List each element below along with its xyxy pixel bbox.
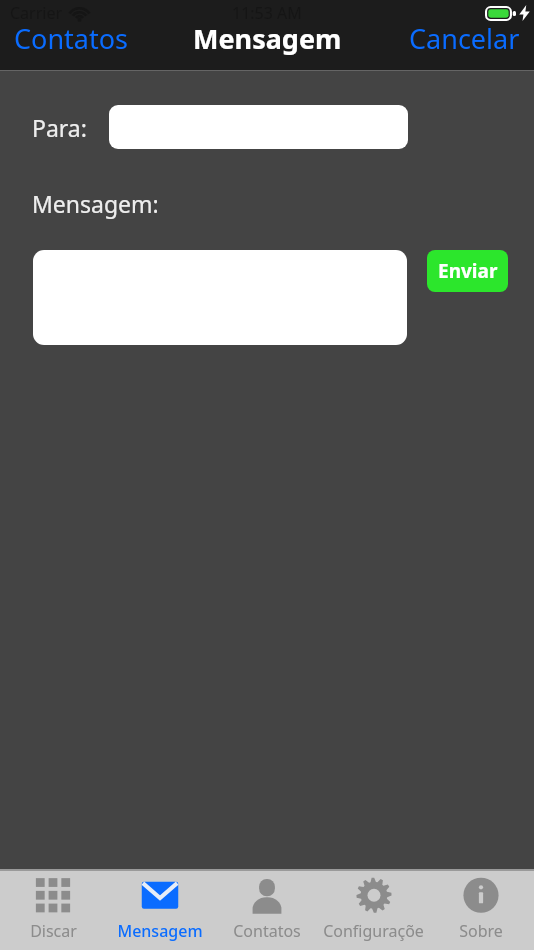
button[interactable]: Cancelar	[409, 20, 520, 57]
button[interactable]: Enviar	[427, 250, 508, 292]
staticText: Contatos	[233, 920, 301, 942]
staticText: Discar	[30, 920, 77, 942]
staticText: Cancelar	[409, 20, 520, 57]
staticText: Configurações	[320, 920, 427, 950]
staticText: Mensagem	[193, 20, 342, 57]
button[interactable]: Contatos	[14, 20, 128, 57]
button[interactable]: Mensagem	[106, 871, 213, 950]
button[interactable]: Mensagem	[33, 250, 407, 345]
button[interactable]: Para	[109, 105, 408, 149]
staticText: Mensagem:	[32, 188, 159, 219]
button[interactable]: Sobre	[427, 871, 534, 950]
staticText: Enviar	[438, 258, 498, 284]
button[interactable]: Configurações	[320, 871, 427, 950]
staticText: Contatos	[14, 20, 128, 57]
button[interactable]: Contatos	[213, 871, 320, 950]
staticText: Sobre	[459, 920, 503, 942]
button[interactable]: Discar	[0, 871, 106, 950]
staticText: Mensagem	[117, 920, 203, 942]
staticText: Para:	[32, 112, 87, 143]
